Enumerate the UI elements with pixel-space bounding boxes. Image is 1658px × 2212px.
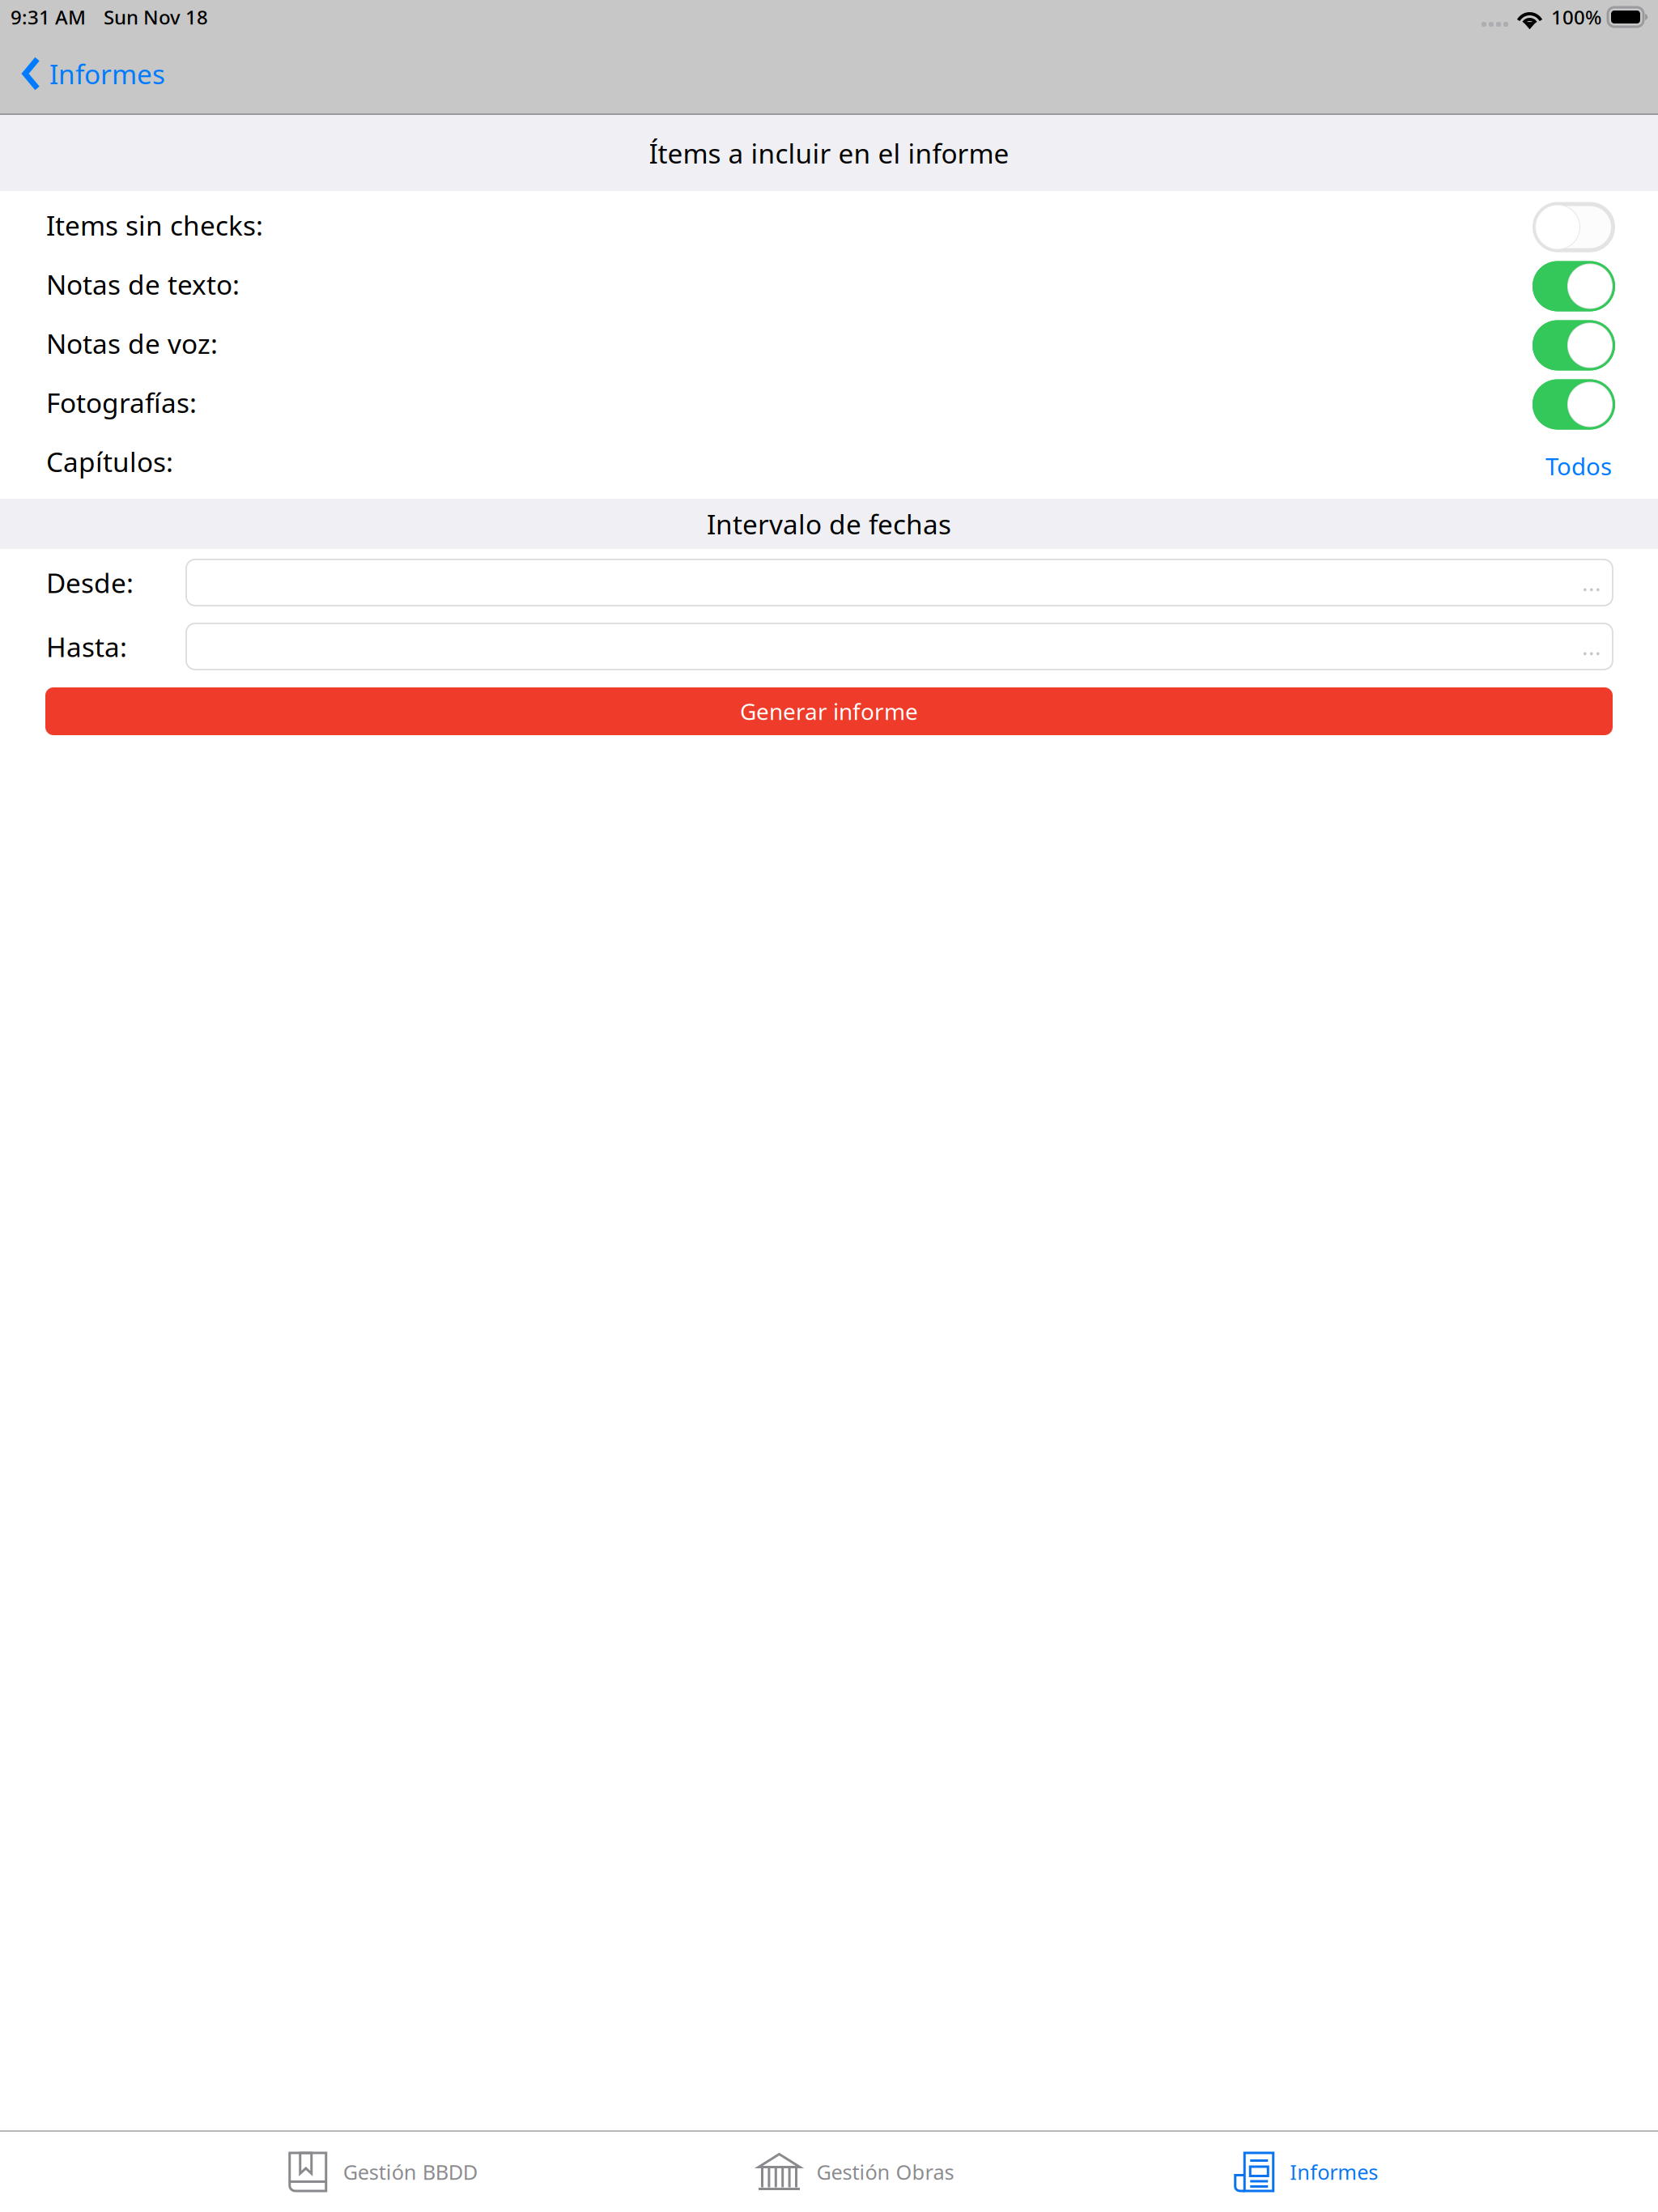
staticText: Fotografías: <box>46 385 197 420</box>
button[interactable]: Informes <box>0 34 165 113</box>
button[interactable]: Fotografías: <box>1533 379 1615 430</box>
button[interactable]: Seleccionar fecha <box>186 623 1613 670</box>
button[interactable]: Seleccionar fecha <box>186 559 1613 606</box>
staticText: Generar informe <box>740 696 918 726</box>
staticText: Sun Nov 18 <box>104 4 208 30</box>
button[interactable]: Notas de voz: <box>1533 320 1615 370</box>
staticText: Capítulos: <box>46 444 173 479</box>
staticText: Informes <box>1290 2158 1378 2186</box>
staticText: 100% <box>1551 4 1601 30</box>
staticText: Notas de texto: <box>46 266 240 302</box>
staticText: ... <box>1582 567 1601 598</box>
staticText: Desde: <box>46 565 134 601</box>
button[interactable]: Gestión Obras <box>757 2132 954 2212</box>
staticText: Items sin checks: <box>46 207 263 243</box>
button[interactable]: Items sin checks: <box>1533 202 1615 252</box>
staticText: 9:31 AM <box>11 4 86 30</box>
staticText: Informes <box>49 56 165 92</box>
staticText: Notas de voz: <box>46 325 218 361</box>
button[interactable]: Notas de texto: <box>1533 261 1615 311</box>
staticText: Ítems a incluir en el informe <box>649 135 1009 171</box>
staticText: Todos <box>1545 450 1612 482</box>
staticText: ... <box>1582 631 1601 662</box>
staticText: Hasta: <box>46 629 127 664</box>
button[interactable]: Generar informe <box>45 687 1613 735</box>
staticText: Gestión Obras <box>816 2158 954 2186</box>
staticText: Gestión BBDD <box>343 2158 477 2186</box>
button[interactable]: Informes <box>1234 2132 1378 2212</box>
button[interactable]: Todos <box>1545 445 1612 482</box>
staticText: Intervalo de fechas <box>707 506 951 542</box>
button[interactable]: Gestión BBDD <box>288 2132 477 2212</box>
